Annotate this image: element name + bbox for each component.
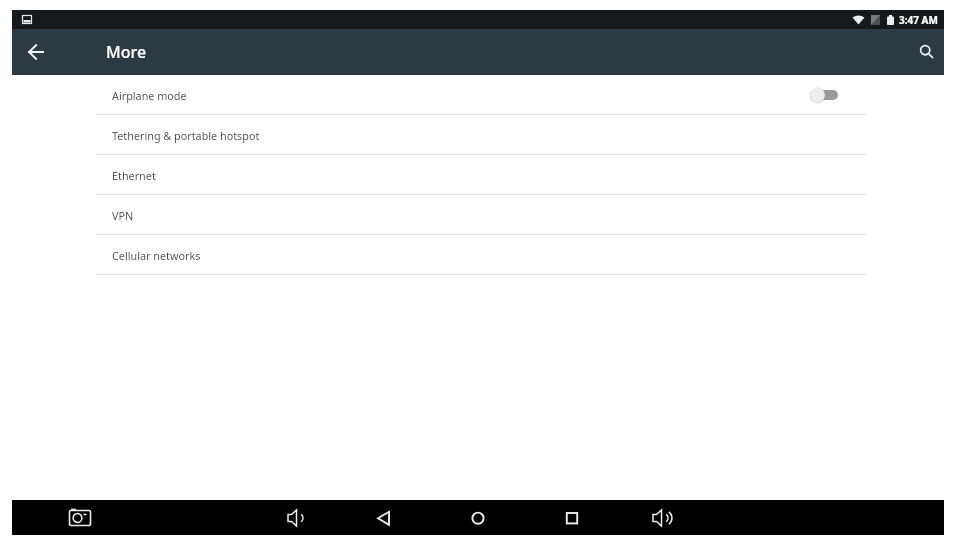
button[interactable] bbox=[592, 500, 672, 535]
button[interactable]: Tethering & portable hotspot bbox=[12, 115, 944, 155]
staticText: More bbox=[106, 41, 147, 63]
button[interactable] bbox=[272, 500, 352, 535]
staticText: Ethernet bbox=[112, 168, 156, 183]
staticText: Cellular networks bbox=[112, 248, 201, 263]
button[interactable] bbox=[12, 500, 152, 535]
button[interactable]: Cellular networks bbox=[12, 235, 944, 275]
button[interactable] bbox=[352, 500, 432, 535]
button[interactable] bbox=[913, 38, 941, 66]
button[interactable] bbox=[432, 500, 512, 535]
staticText: 3:47 AM bbox=[899, 13, 938, 27]
button[interactable] bbox=[20, 36, 52, 68]
button[interactable]: VPN bbox=[12, 195, 944, 235]
staticText: VPN bbox=[112, 208, 134, 223]
button[interactable]: Ethernet bbox=[12, 155, 944, 195]
staticText: Tethering & portable hotspot bbox=[112, 128, 260, 143]
button[interactable]: Airplane mode bbox=[12, 75, 944, 115]
button[interactable] bbox=[512, 500, 592, 535]
staticText: Airplane mode bbox=[112, 88, 187, 103]
